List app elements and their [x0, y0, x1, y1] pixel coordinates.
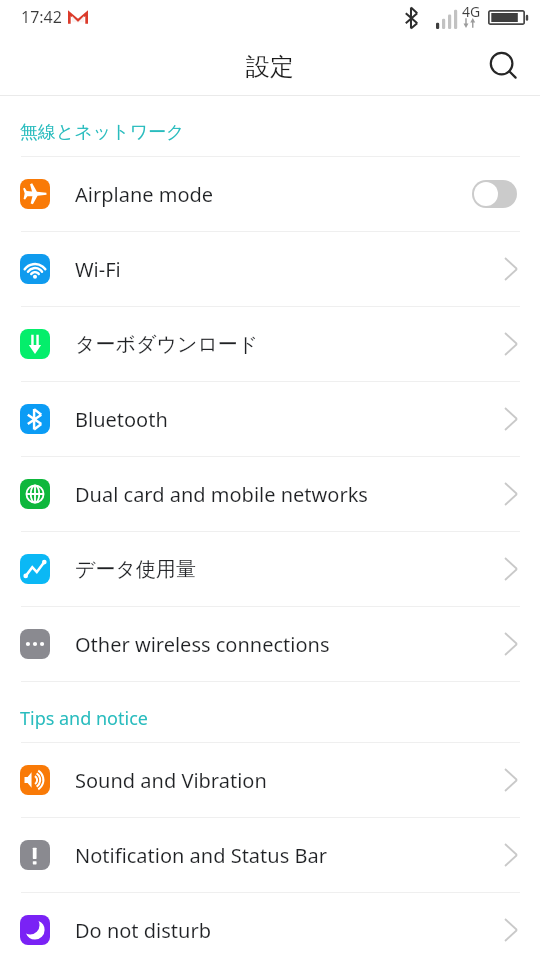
button[interactable]: Notification and Status Bar [0, 818, 540, 892]
staticText: Dual card and mobile networks [75, 481, 505, 508]
staticText: ターボダウンロード [75, 332, 505, 357]
staticText: Airplane mode [75, 181, 472, 208]
staticText: 設定 [246, 52, 294, 82]
button[interactable]: Dual card and mobile networks [0, 457, 540, 531]
button[interactable]: Search [478, 38, 532, 92]
button[interactable]: ターボダウンロード [0, 307, 540, 381]
staticText: Do not disturb [75, 917, 505, 944]
button[interactable]: Bluetooth [0, 382, 540, 456]
staticText: Other wireless connections [75, 631, 505, 658]
button[interactable]: Do not disturb [0, 893, 540, 960]
button[interactable]: Other wireless connections [0, 607, 540, 681]
staticText: 17:42 [21, 6, 62, 28]
button[interactable]: Airplane mode toggle [472, 180, 517, 208]
button[interactable]: データ使用量 [0, 532, 540, 606]
staticText: Notification and Status Bar [75, 842, 505, 869]
staticText: データ使用量 [75, 557, 505, 582]
button[interactable]: Sound and Vibration [0, 743, 540, 817]
button[interactable]: Wi-Fi [0, 232, 540, 306]
staticText: Wi-Fi [75, 256, 505, 283]
staticText: Tips and notice [20, 706, 148, 731]
staticText: Sound and Vibration [75, 767, 505, 794]
staticText: Bluetooth [75, 406, 505, 433]
staticText: 無線とネットワーク [20, 121, 185, 144]
staticText: 4G [462, 2, 481, 21]
button[interactable]: Airplane mode [0, 157, 540, 231]
